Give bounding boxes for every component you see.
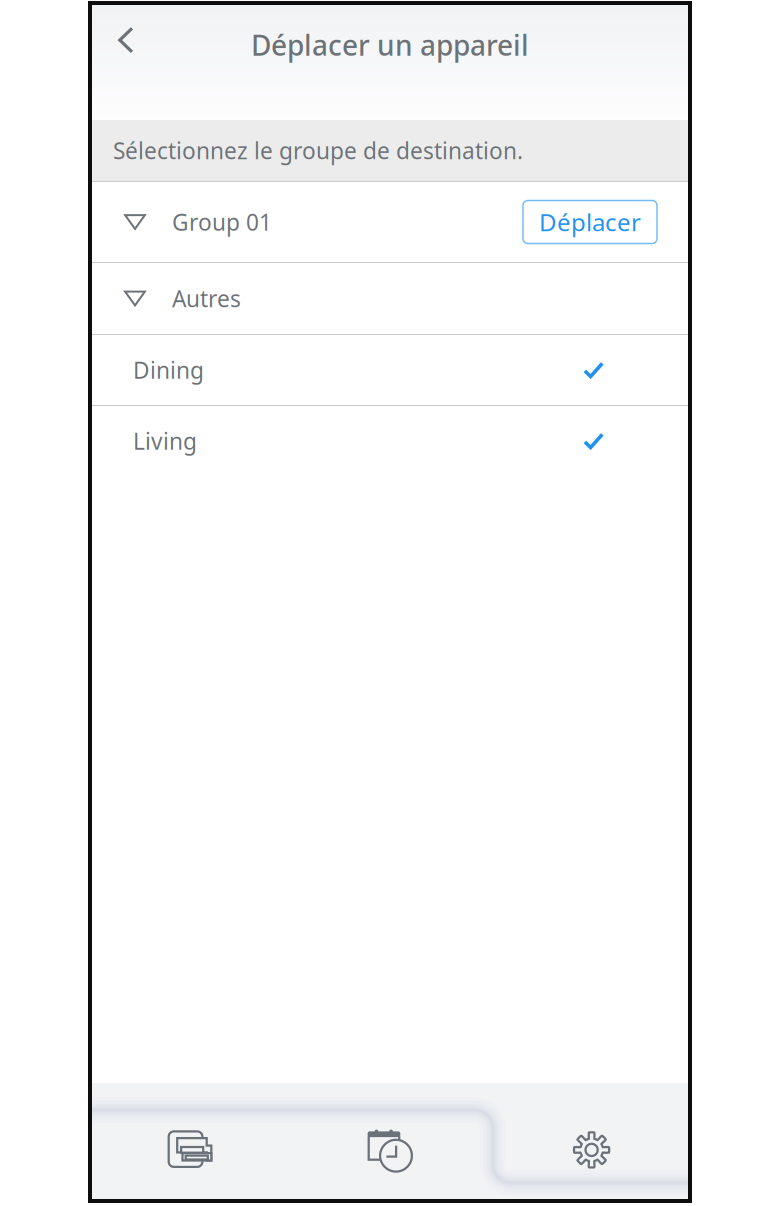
- button[interactable]: Settings: [489, 1083, 688, 1199]
- staticText: Living: [133, 426, 197, 456]
- button[interactable]: Living: [92, 406, 688, 476]
- staticText: Group 01: [172, 207, 272, 237]
- staticText: Déplacer: [539, 206, 641, 238]
- staticText: Sélectionnez le groupe de destination.: [113, 135, 523, 165]
- staticText: Dining: [133, 355, 204, 385]
- staticText: Autres: [172, 283, 241, 313]
- button[interactable]: Schedule: [291, 1083, 489, 1199]
- button[interactable]: Devices: [92, 1083, 291, 1199]
- button[interactable]: Déplacer: [523, 200, 657, 243]
- button[interactable]: Dining: [92, 335, 688, 405]
- staticText: Déplacer un appareil: [251, 26, 529, 64]
- button[interactable]: Back: [91, 5, 161, 75]
